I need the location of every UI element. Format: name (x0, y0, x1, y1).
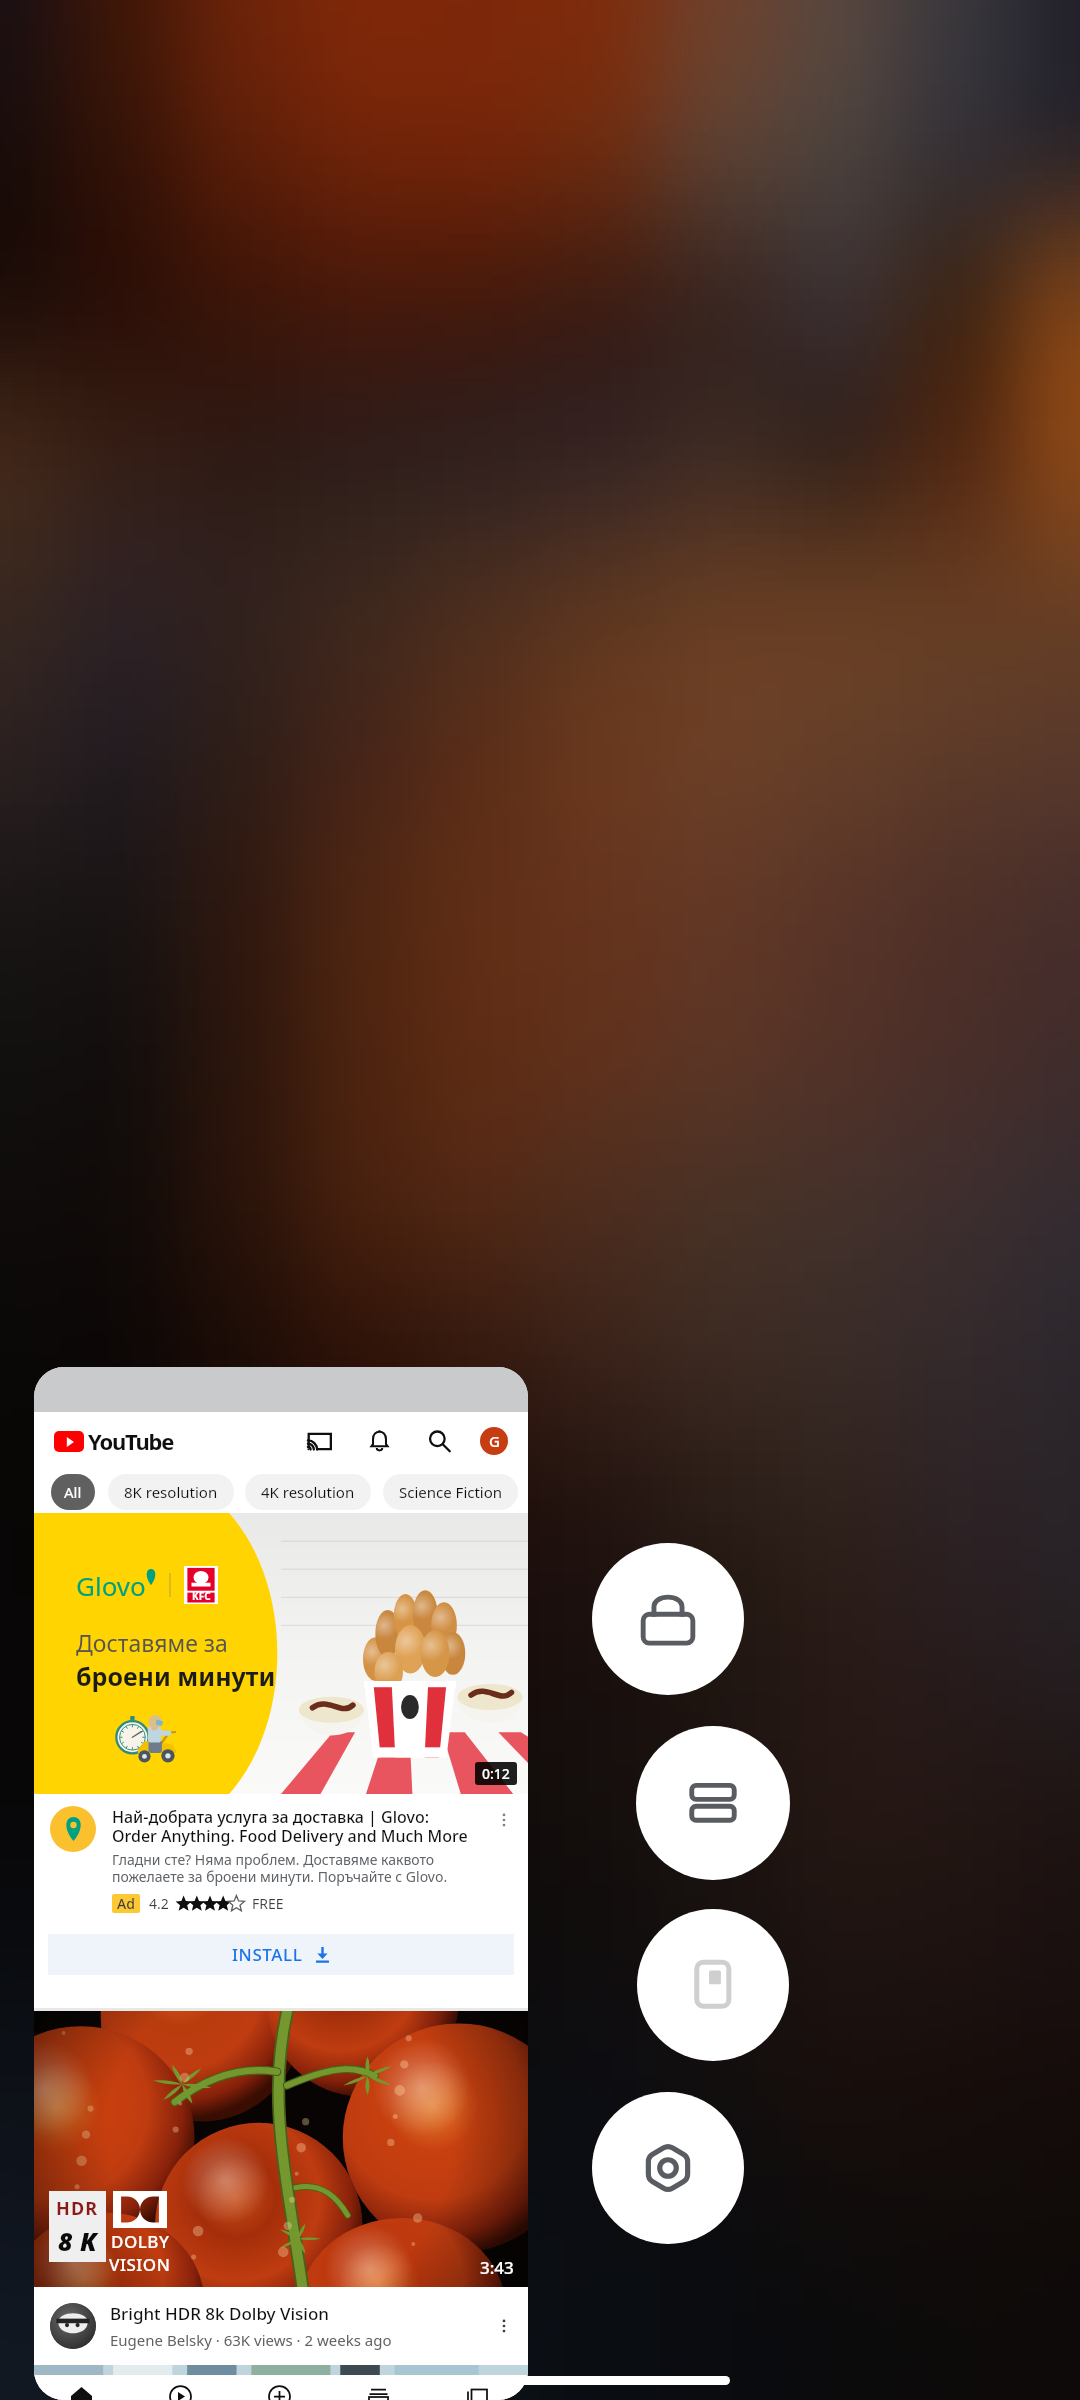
staticText: Ad (117, 1894, 135, 1913)
button[interactable]: Library (429, 2375, 528, 2400)
button[interactable]: Science Fiction (383, 1474, 518, 1510)
staticText: Bright HDR 8k Dolby Vision (110, 2302, 329, 2325)
button[interactable]: Shorts (132, 2375, 231, 2400)
button[interactable]: Subscriptions (330, 2375, 429, 2400)
staticText: All (64, 1482, 82, 1502)
button[interactable]: More options (490, 2312, 518, 2340)
button[interactable]: Lock (592, 1543, 744, 1695)
staticText: FREE (252, 1894, 284, 1913)
staticText: YouTube (88, 1426, 174, 1456)
staticText: 4.2 (149, 1894, 169, 1913)
button[interactable]: All (51, 1474, 95, 1510)
staticText: INSTALL (232, 1943, 303, 1966)
staticText: HDR (56, 2196, 99, 2221)
staticText: G (489, 1431, 500, 1451)
button[interactable]: More (490, 1806, 518, 1834)
staticText: DOLBY (111, 2230, 170, 2253)
button[interactable]: INSTALL (48, 1934, 514, 1975)
staticText: 3:43 (480, 2256, 514, 2279)
button[interactable]: Home (34, 2375, 132, 2400)
button[interactable]: Notifications (362, 1424, 396, 1458)
button[interactable]: 4K resolution (245, 1474, 371, 1510)
staticText: 8K resolution (124, 1482, 218, 1502)
staticText: 0:12 (482, 1764, 510, 1783)
staticText: Science Fiction (399, 1482, 503, 1502)
staticText: 4K resolution (261, 1482, 355, 1502)
button[interactable]: Account (480, 1427, 508, 1455)
button[interactable]: 8K resolution (108, 1474, 234, 1510)
button[interactable]: Split screen (636, 1726, 790, 1880)
staticText: Доставяме за (76, 1627, 228, 1658)
button[interactable]: Picture in picture (637, 1909, 789, 2061)
button[interactable]: Cast (302, 1424, 336, 1458)
staticText: Най-добрата услуга за доставка | Glovo: … (112, 1806, 468, 1847)
button[interactable]: Create (231, 2375, 330, 2400)
staticText: KFC (192, 1589, 211, 1603)
staticText: Eugene Belsky · 63K views · 2 weeks ago (110, 2330, 392, 2350)
button[interactable]: App settings (592, 2092, 744, 2244)
staticText: Гладни сте? Няма проблем. Доставяме какв… (112, 1850, 448, 1886)
staticText: VISION (109, 2253, 171, 2276)
staticText: Glovo (76, 1568, 146, 1603)
staticText: броени минути (76, 1659, 276, 1693)
button[interactable]: YouTube (54, 1426, 174, 1456)
staticText: 8 K (58, 2224, 98, 2258)
button[interactable]: Search (422, 1424, 456, 1458)
